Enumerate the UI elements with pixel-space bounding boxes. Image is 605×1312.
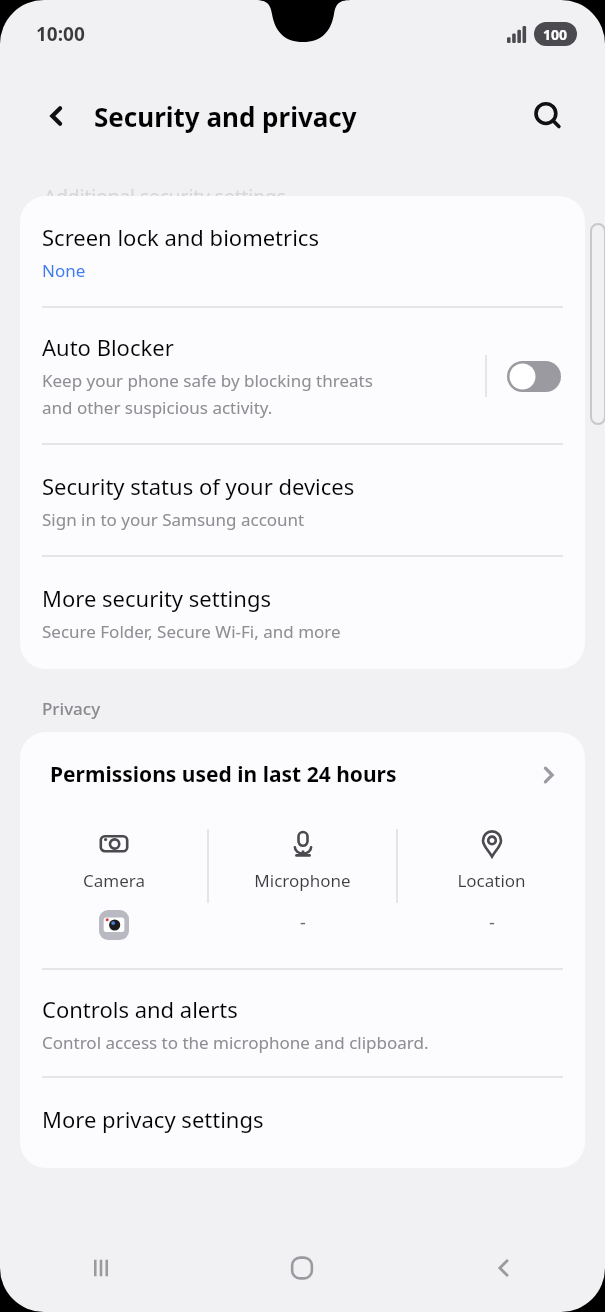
staticText: Privacy [42,697,101,720]
staticText: 10:00 [36,21,85,47]
button[interactable]: Back [403,1224,605,1312]
staticText: Security status of your devices [42,471,355,501]
button[interactable]: Search [519,87,577,145]
staticText: Auto Blocker [42,332,174,362]
staticText: Location [457,869,526,892]
staticText: Sign in to your Samsung account [42,508,305,531]
staticText: - [300,910,306,935]
staticText: More security settings [42,583,271,613]
staticText: Controls and alerts [42,994,238,1024]
staticText: 100 [543,25,568,44]
button[interactable]: Recent apps [0,1224,201,1312]
button[interactable]: More security settings [20,557,585,669]
staticText: More privacy settings [42,1104,264,1134]
button[interactable]: Home [201,1224,403,1312]
staticText: Microphone [254,869,351,892]
staticText: - [489,910,495,935]
staticText: and other suspicious activity. [42,396,273,419]
button[interactable]: Screen lock and biometrics [20,196,585,306]
staticText: Keep your phone safe by blocking threats [42,369,373,392]
staticText: Secure Folder, Secure Wi-Fi, and more [42,620,341,643]
button[interactable]: Auto Blocker toggle [503,354,565,398]
staticText: Control access to the microphone and cli… [42,1031,429,1054]
staticText: None [42,259,86,282]
button[interactable]: Camera [20,825,207,942]
staticText: Security and privacy [94,99,357,134]
button[interactable]: Back [26,85,88,147]
button[interactable]: Microphone [209,825,396,937]
staticText: Additional security settings [44,184,286,210]
staticText: Camera [83,869,145,892]
button[interactable]: Location [398,825,585,937]
staticText: Permissions used in last 24 hours [50,760,535,789]
staticText: Screen lock and biometrics [42,222,319,252]
button[interactable]: Auto Blocker [20,308,585,443]
button[interactable]: Security status of your devices [20,445,585,555]
button[interactable]: More privacy settings [20,1078,585,1168]
button[interactable]: Controls and alerts [20,970,585,1076]
button[interactable]: Permissions used in last 24 hours [20,732,585,803]
